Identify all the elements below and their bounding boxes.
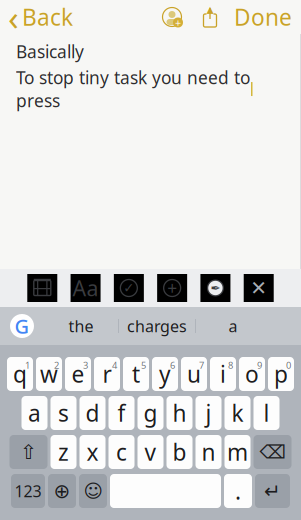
button[interactable]: h (166, 396, 192, 430)
staticText: 7 (199, 359, 204, 371)
button[interactable]: u (181, 357, 207, 391)
staticText: s (58, 398, 69, 428)
staticText: ⊕ (53, 480, 70, 502)
staticText: m (227, 437, 248, 467)
staticText: e (71, 359, 84, 389)
staticText: d (85, 398, 99, 428)
staticText: 4 (112, 359, 117, 371)
button[interactable]: Add (157, 274, 187, 302)
button[interactable]: the (44, 307, 118, 345)
button[interactable]: ‹ (0, 2, 79, 32)
button[interactable]: m (224, 435, 250, 469)
staticText: ☺ (83, 480, 102, 502)
button[interactable]: e (65, 357, 91, 391)
button[interactable]: w (36, 357, 62, 391)
staticText: 3 (83, 359, 88, 371)
button[interactable]: v (137, 435, 163, 469)
staticText: a (28, 398, 41, 428)
button[interactable]: l (253, 396, 279, 430)
button[interactable]: . (224, 474, 252, 508)
button[interactable]: j (195, 396, 221, 430)
button[interactable]: Done (225, 2, 301, 32)
staticText: y (159, 359, 171, 389)
button[interactable]: 123 (11, 474, 45, 508)
button[interactable]: s (50, 396, 76, 430)
staticText: charges (127, 315, 187, 337)
staticText: ‹ (8, 0, 19, 40)
staticText: b (172, 437, 186, 467)
staticText: Back (22, 2, 73, 32)
staticText: ✓ (123, 280, 134, 295)
button[interactable]: z (50, 435, 76, 469)
staticText: 2 (54, 359, 59, 371)
button[interactable]: n (195, 435, 221, 469)
staticText: h (172, 398, 186, 428)
button[interactable]: Checklist (114, 274, 144, 302)
staticText: 5 (141, 359, 146, 371)
button[interactable]: ⊕ (48, 474, 76, 508)
staticText: 123 (14, 480, 41, 502)
staticText: t (132, 359, 140, 389)
button[interactable]: ↵ (255, 474, 290, 508)
button[interactable] (110, 474, 221, 508)
staticText: j (205, 398, 211, 428)
staticText: To stop tiny task you need to press (16, 66, 250, 112)
button[interactable]: k (224, 396, 250, 430)
staticText: u (187, 359, 201, 389)
staticText: k (231, 398, 243, 428)
button[interactable]: t (123, 357, 149, 391)
staticText: the (68, 315, 93, 337)
staticText: p (274, 359, 288, 389)
button[interactable]: g (137, 396, 163, 430)
staticText: + (167, 276, 177, 299)
button[interactable]: Text format (71, 274, 101, 302)
staticText: n (201, 437, 215, 467)
staticText: v (144, 437, 156, 467)
button[interactable]: o (239, 357, 265, 391)
staticText: z (58, 437, 69, 467)
staticText: ✒ (210, 281, 220, 295)
button[interactable]: p (268, 357, 294, 391)
button[interactable]: Close (244, 274, 274, 302)
button[interactable]: i (210, 357, 236, 391)
staticText: Done (234, 2, 292, 32)
staticText: 0 (286, 359, 291, 371)
staticText: G (14, 313, 29, 339)
staticText: w (40, 359, 58, 389)
button[interactable]: a (21, 396, 47, 430)
button[interactable]: f (108, 396, 134, 430)
button[interactable]: charges (119, 307, 195, 345)
button[interactable]: ☺ (79, 474, 107, 508)
staticText: x (86, 437, 98, 467)
button[interactable]: Add people (155, 2, 189, 32)
staticText: i (220, 359, 226, 389)
button[interactable]: q (7, 357, 33, 391)
staticText: r (102, 359, 111, 389)
staticText: . (235, 476, 241, 506)
button[interactable]: Markup (200, 274, 230, 302)
staticText: + (175, 15, 181, 30)
button[interactable]: b (166, 435, 192, 469)
button[interactable]: y (152, 357, 178, 391)
button[interactable]: ⇧ (9, 435, 47, 469)
button[interactable]: x (79, 435, 105, 469)
button[interactable]: Google (0, 307, 44, 345)
staticText: ⌫ (259, 441, 285, 463)
button[interactable]: r (94, 357, 120, 391)
staticText: Basically (16, 40, 84, 63)
button[interactable]: Table (27, 274, 57, 302)
staticText: 1 (25, 359, 30, 371)
button[interactable]: c (108, 435, 134, 469)
staticText: ↵ (264, 480, 281, 502)
staticText: 6 (170, 359, 175, 371)
button[interactable]: ⌫ (253, 435, 291, 469)
button[interactable]: d (79, 396, 105, 430)
staticText: o (245, 359, 259, 389)
staticText: ▲ (206, 4, 213, 15)
staticText: ⇧ (20, 441, 37, 463)
staticText: f (117, 398, 125, 428)
staticText: q (13, 359, 27, 389)
button[interactable]: Share (189, 2, 225, 32)
staticText: 9 (257, 359, 262, 371)
button[interactable]: a (196, 307, 270, 345)
